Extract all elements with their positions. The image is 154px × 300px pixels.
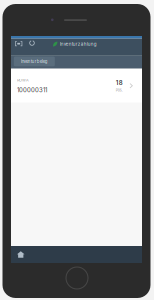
button[interactable]: Refresh <box>27 39 36 48</box>
staticText: Inventurbeleg <box>21 59 48 64</box>
staticText: Inventurzählung <box>60 41 97 47</box>
staticText: Pos. <box>116 88 123 92</box>
button[interactable]: Inventurbeleg <box>14 56 55 66</box>
button[interactable]: Home <box>14 247 27 262</box>
staticText: 100000311 <box>17 86 47 94</box>
button[interactable]: Scan barcode <box>14 39 24 48</box>
button[interactable]: ROWA <box>11 69 142 103</box>
staticText: ROWA <box>17 78 29 82</box>
staticText: 18 <box>116 79 123 87</box>
